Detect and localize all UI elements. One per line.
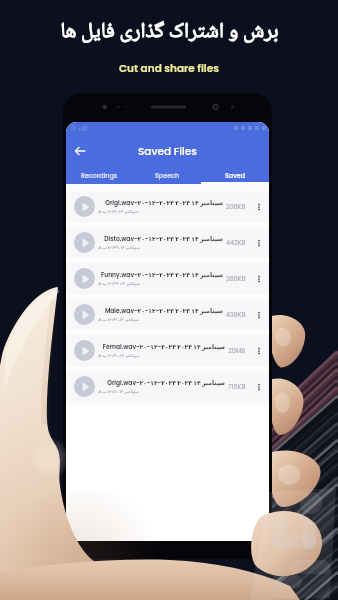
staticText: سپتامبر ۱۴، ۲:۲۴ ب.ظ	[98, 208, 139, 215]
staticText: Recordings	[81, 171, 118, 180]
staticText: سپتامبر ۱۴، ۱۲:۳۹ ب.ظ	[98, 244, 140, 251]
staticText: 442KB	[226, 238, 246, 247]
button[interactable]: More options	[253, 309, 265, 321]
button[interactable]: More options	[253, 381, 265, 393]
staticText: Funny.wav-۲۰-۱۲-۲۰۲۳ ۲۰۲۳ سپتامبر ۱۴	[98, 271, 223, 279]
staticText: 386KB	[226, 274, 246, 283]
button[interactable]: Saved	[201, 167, 269, 184]
staticText: 438KB	[226, 310, 246, 319]
button[interactable]: Origi.wav-۲۰-۱۲-۲۰۲۳ ۲۰۲۳ سپتامبر ۱۴	[66, 191, 269, 222]
button[interactable]: More options	[253, 345, 265, 357]
staticText: Disto.wav-۲۰-۱۲-۲۰۲۳ ۲۰۲۳ سپتامبر ۱۴	[98, 235, 223, 243]
staticText: برش و اشتراک گذاری فایل ها	[60, 15, 279, 51]
button[interactable]: Disto.wav-۲۰-۱۲-۲۰۲۳ ۲۰۲۳ سپتامبر ۱۴	[66, 227, 269, 258]
staticText: Origi.wav-۲۰-۱۲-۲۰۲۳ ۲۰۲۳ سپتامبر ۱۴	[98, 199, 223, 207]
button[interactable]: Recordings	[66, 167, 133, 184]
staticText: Cut and share files	[119, 61, 219, 76]
button[interactable]: More options	[253, 201, 265, 213]
button[interactable]: Funny.wav-۲۰-۱۲-۲۰۲۳ ۲۰۲۳ سپتامبر ۱۴	[66, 263, 269, 294]
staticText: سپتامبر ۱۴، ۱۲:۳۰ ب.ظ	[98, 352, 140, 359]
button[interactable]: Speech	[133, 167, 201, 184]
button[interactable]: More options	[253, 237, 265, 249]
staticText: Speech	[155, 171, 180, 180]
staticText: 20MB	[228, 346, 246, 355]
staticText: Male.wav-۲۰-۱۲-۲۰۲۳ ۲۰۲۳ سپتامبر ۱۴	[98, 307, 223, 315]
staticText: 206KB	[226, 202, 246, 211]
staticText: سپتامبر ۱۴، ۱۲:۳۷ ب.ظ	[98, 280, 141, 287]
staticText: سپتامبر ۱۴، ۱۲:۳۱ ب.ظ	[98, 316, 139, 323]
staticText: Saved Files	[138, 144, 197, 159]
staticText: 716KB	[228, 382, 246, 391]
button[interactable]: Back	[71, 142, 89, 160]
button[interactable]: Male.wav-۲۰-۱۲-۲۰۲۳ ۲۰۲۳ سپتامبر ۱۴	[66, 299, 269, 330]
button[interactable]: Origi.wav-۲۰-۱۲-۲۰۲۳ ۲۰۲۳ سپتامبر ۱۴	[66, 371, 269, 402]
staticText: Origi.wav-۲۰-۱۲-۲۰۲۳ ۲۰۲۳ سپتامبر ۱۴	[98, 379, 225, 387]
staticText: Saved	[225, 171, 246, 180]
button[interactable]: More options	[253, 273, 265, 285]
button[interactable]: Femal.wav-۲۰-۱۲-۲۰۲۳ ۲۰۲۳ سپتامبر ۱۴	[66, 335, 269, 366]
staticText: سپتامبر ۱۴، ۱۲:۱۷ ب.ظ	[98, 388, 139, 395]
staticText: Femal.wav-۲۰-۱۲-۲۰۲۳ ۲۰۲۳ سپتامبر ۱۴	[98, 343, 225, 351]
